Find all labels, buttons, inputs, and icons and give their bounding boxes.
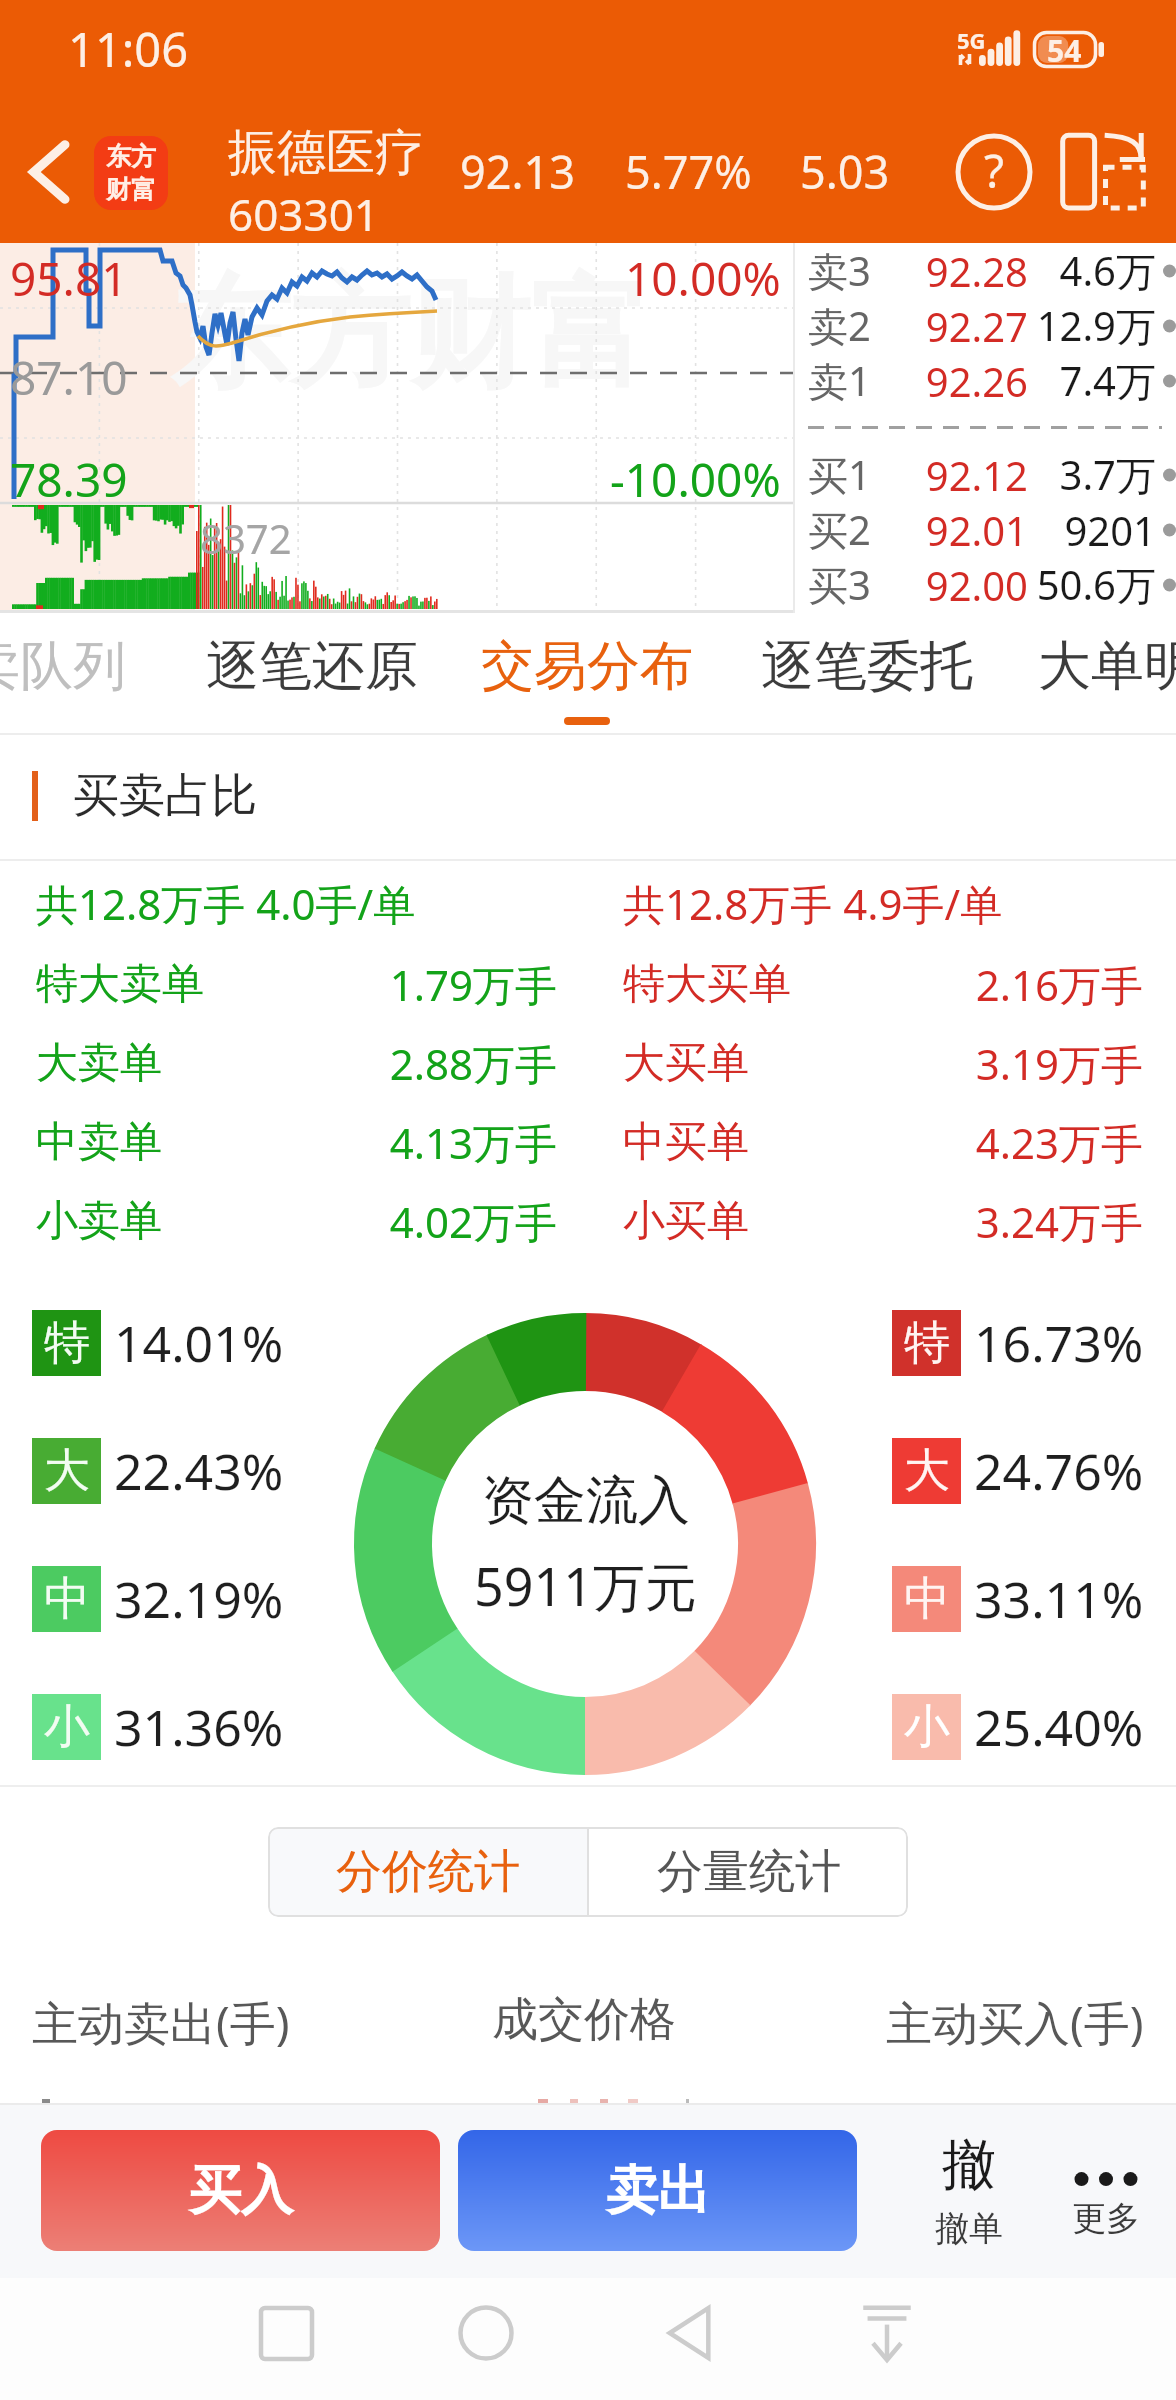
staticText: 大卖单 [36, 1037, 266, 1090]
staticText: 撤单 [935, 2207, 1003, 2250]
staticText: 买1 [808, 447, 920, 502]
staticText: 5.77% [625, 141, 800, 202]
staticText: 特大卖单 [36, 958, 266, 1011]
staticText: 更多 [1072, 2197, 1140, 2240]
staticText: 小卖单 [36, 1195, 266, 1248]
staticText: 买3 [808, 557, 920, 612]
staticText: 分量统计 [657, 1843, 841, 1901]
staticText: 大单明细 [1038, 633, 1176, 700]
staticText: 7.4万 [1028, 353, 1156, 408]
staticText: 92.13 [460, 141, 625, 202]
button[interactable]: 卖2 [808, 298, 1176, 353]
staticText: -10.00% [610, 448, 781, 511]
staticText: 5G [957, 25, 986, 55]
staticText: 1.79万手 [266, 956, 557, 1013]
staticText: 92.00 [920, 558, 1028, 612]
staticText: 92.12 [920, 448, 1028, 502]
staticText: 22.43% [114, 1437, 284, 1505]
staticText: 25.40% [974, 1693, 1144, 1761]
staticText: 卖1 [808, 353, 920, 408]
staticText: 买2 [808, 502, 920, 557]
staticText: 10.00% [625, 247, 781, 310]
button[interactable]: 逐笔委托 [737, 613, 997, 735]
staticText: 共12.8万手 4.0手/单 [36, 875, 623, 932]
button[interactable]: 更多 [1042, 2103, 1170, 2278]
staticText: 卖出 [606, 2158, 710, 2224]
staticText: 4.02万手 [266, 1193, 557, 1250]
staticText: 3.7万 [1028, 447, 1156, 502]
staticText: 12.9万 [1028, 298, 1156, 353]
staticText: 特 [904, 1314, 950, 1372]
staticText: 中买单 [623, 1116, 853, 1169]
staticText: 4.23万手 [853, 1114, 1143, 1171]
staticText: 4.6万 [1028, 243, 1156, 298]
button[interactable]: 卖1 [808, 353, 1176, 408]
staticText: 92.01 [920, 503, 1028, 557]
button[interactable]: Rotate screen [1047, 116, 1159, 228]
staticText: 87.10 [10, 346, 128, 409]
button[interactable]: 买2 [808, 502, 1176, 557]
staticText: 分价统计 [336, 1843, 520, 1901]
button[interactable]: Home [431, 2278, 541, 2388]
staticText: 中卖单 [36, 1116, 266, 1169]
button[interactable]: Back [634, 2278, 744, 2388]
staticText: 14.01% [114, 1309, 284, 1377]
button[interactable]: 卖3 [808, 243, 1176, 298]
button[interactable]: Back [0, 100, 98, 243]
staticText: 小买单 [623, 1195, 853, 1248]
staticText: 中 [44, 1570, 90, 1628]
staticText: 小 [44, 1698, 90, 1756]
staticText: 共12.8万手 4.9手/单 [623, 875, 1176, 932]
staticText: 50.6万 [1028, 557, 1156, 612]
staticText: 5911万元 [474, 1550, 697, 1621]
staticText: 中 [904, 1570, 950, 1628]
staticText: 大 [904, 1442, 950, 1500]
staticText: 2.16万手 [853, 956, 1143, 1013]
staticText: 11:06 [68, 17, 189, 81]
button[interactable]: 买入 [41, 2130, 440, 2251]
button[interactable]: Recents [231, 2278, 341, 2388]
staticText: 特 [44, 1314, 90, 1372]
staticText: 2.88万手 [266, 1035, 557, 1092]
staticText: 54 [1047, 30, 1082, 67]
staticText: 东方 [106, 141, 156, 172]
staticText: 3.19万手 [853, 1035, 1143, 1092]
staticText: 95.81 [10, 247, 128, 310]
staticText: 财富 [106, 174, 156, 205]
button[interactable]: 买3 [808, 557, 1176, 612]
button[interactable]: 撤 [905, 2103, 1033, 2278]
button[interactable]: Help [938, 116, 1050, 228]
staticText: 振德医疗 [228, 122, 424, 184]
staticText: 5.03 [800, 141, 890, 202]
staticText: 买卖占比 [73, 767, 257, 825]
staticText: 8372 [200, 511, 292, 565]
staticText: 买入 [189, 2158, 293, 2224]
staticText: 卖队列 [0, 633, 126, 700]
staticText: 卖2 [808, 298, 920, 353]
staticText: 大 [44, 1442, 90, 1500]
staticText: 31.36% [114, 1693, 284, 1761]
button[interactable]: 买1 [808, 447, 1176, 502]
staticText: 主动买入(手) [886, 1991, 1144, 2054]
staticText: 32.19% [114, 1565, 284, 1633]
staticText: 特大买单 [623, 958, 853, 1011]
staticText: ? [984, 139, 1004, 202]
button[interactable]: 逐笔还原 [182, 613, 442, 735]
button[interactable]: 卖队列 [0, 613, 170, 735]
button[interactable]: 交易分布 [457, 613, 717, 735]
staticText: 9201 [1028, 503, 1156, 557]
button[interactable]: 大单明细 [1014, 613, 1176, 735]
staticText: 24.76% [974, 1437, 1144, 1505]
staticText: 92.28 [920, 244, 1028, 298]
staticText: 16.73% [974, 1309, 1144, 1377]
button[interactable]: Hide keyboard [832, 2278, 942, 2388]
button[interactable]: 卖出 [458, 2130, 857, 2251]
staticText: 资金流入 [482, 1468, 690, 1534]
button[interactable]: 分量统计 [589, 1827, 908, 1917]
staticText: 东方财富 [170, 259, 650, 410]
staticText: 92.27 [920, 299, 1028, 353]
button[interactable]: 分价统计 [268, 1827, 587, 1917]
staticText: 92.26 [920, 354, 1028, 408]
staticText: 成交价格 [492, 1991, 676, 2049]
staticText: 主动卖出(手) [32, 1991, 290, 2054]
